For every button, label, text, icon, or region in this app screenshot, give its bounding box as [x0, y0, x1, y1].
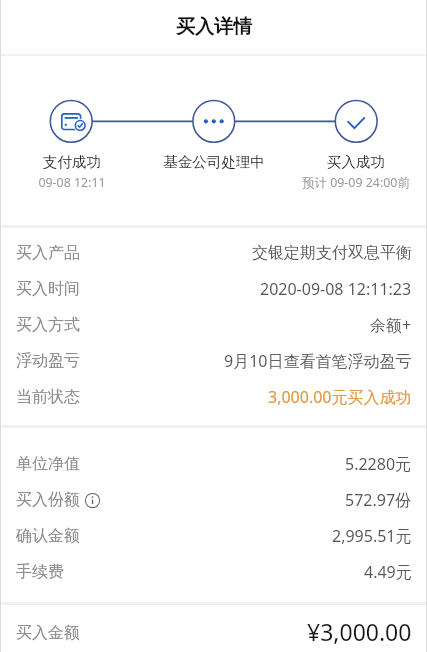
staticText: 2,995.51元 [332, 525, 412, 547]
button[interactable]: 买入成功 [334, 99, 378, 143]
staticText: 预计 09-09 24:00前 [302, 174, 410, 191]
staticText: 5.2280元 [345, 453, 412, 475]
staticText: 3,000.00元买入成功 [268, 386, 412, 408]
button[interactable]: 支付成功 [49, 99, 93, 143]
staticText: 余额+ [370, 314, 412, 336]
staticText: 09-08 12:11 [38, 174, 106, 191]
staticText: 买入金额 [16, 623, 80, 643]
staticText: 9月10日查看首笔浮动盈亏 [224, 350, 412, 372]
button[interactable]: 确认金额 [0, 518, 427, 554]
button[interactable]: 单位净值 [0, 446, 427, 482]
button[interactable]: 买入方式 [0, 307, 427, 343]
button[interactable]: 份额说明 [85, 493, 100, 508]
button[interactable]: 手续费 [0, 554, 427, 590]
staticText: 手续费 [16, 562, 64, 582]
staticText: 2020-09-08 12:11:23 [260, 278, 412, 300]
staticText: 确认金额 [16, 526, 80, 546]
staticText: 浮动盈亏 [16, 351, 80, 371]
staticText: 买入方式 [16, 315, 80, 335]
button[interactable]: 买入时间 [0, 271, 427, 307]
staticText: 4.49元 [364, 561, 412, 583]
button[interactable]: 买入产品 [0, 235, 427, 271]
staticText: 买入份额 [16, 490, 80, 510]
staticText: 交银定期支付双息平衡 [252, 243, 412, 263]
staticText: 单位净值 [16, 454, 80, 474]
button[interactable]: 当前状态 [0, 379, 427, 415]
staticText: 买入时间 [16, 279, 80, 299]
staticText: 支付成功 [43, 153, 101, 171]
button[interactable]: 基金公司处理中 [192, 99, 236, 143]
staticText: 买入产品 [16, 243, 80, 263]
staticText: 当前状态 [16, 387, 80, 407]
staticText: 买入成功 [327, 153, 385, 171]
button[interactable]: 买入份额 [0, 482, 427, 518]
staticText: ¥3,000.00 [307, 616, 412, 647]
button[interactable]: 浮动盈亏 [0, 343, 427, 379]
staticText: 基金公司处理中 [163, 153, 265, 171]
staticText: 572.97份 [345, 489, 412, 511]
button[interactable]: 买入金额 [0, 605, 427, 652]
staticText: 买入详情 [176, 15, 252, 39]
